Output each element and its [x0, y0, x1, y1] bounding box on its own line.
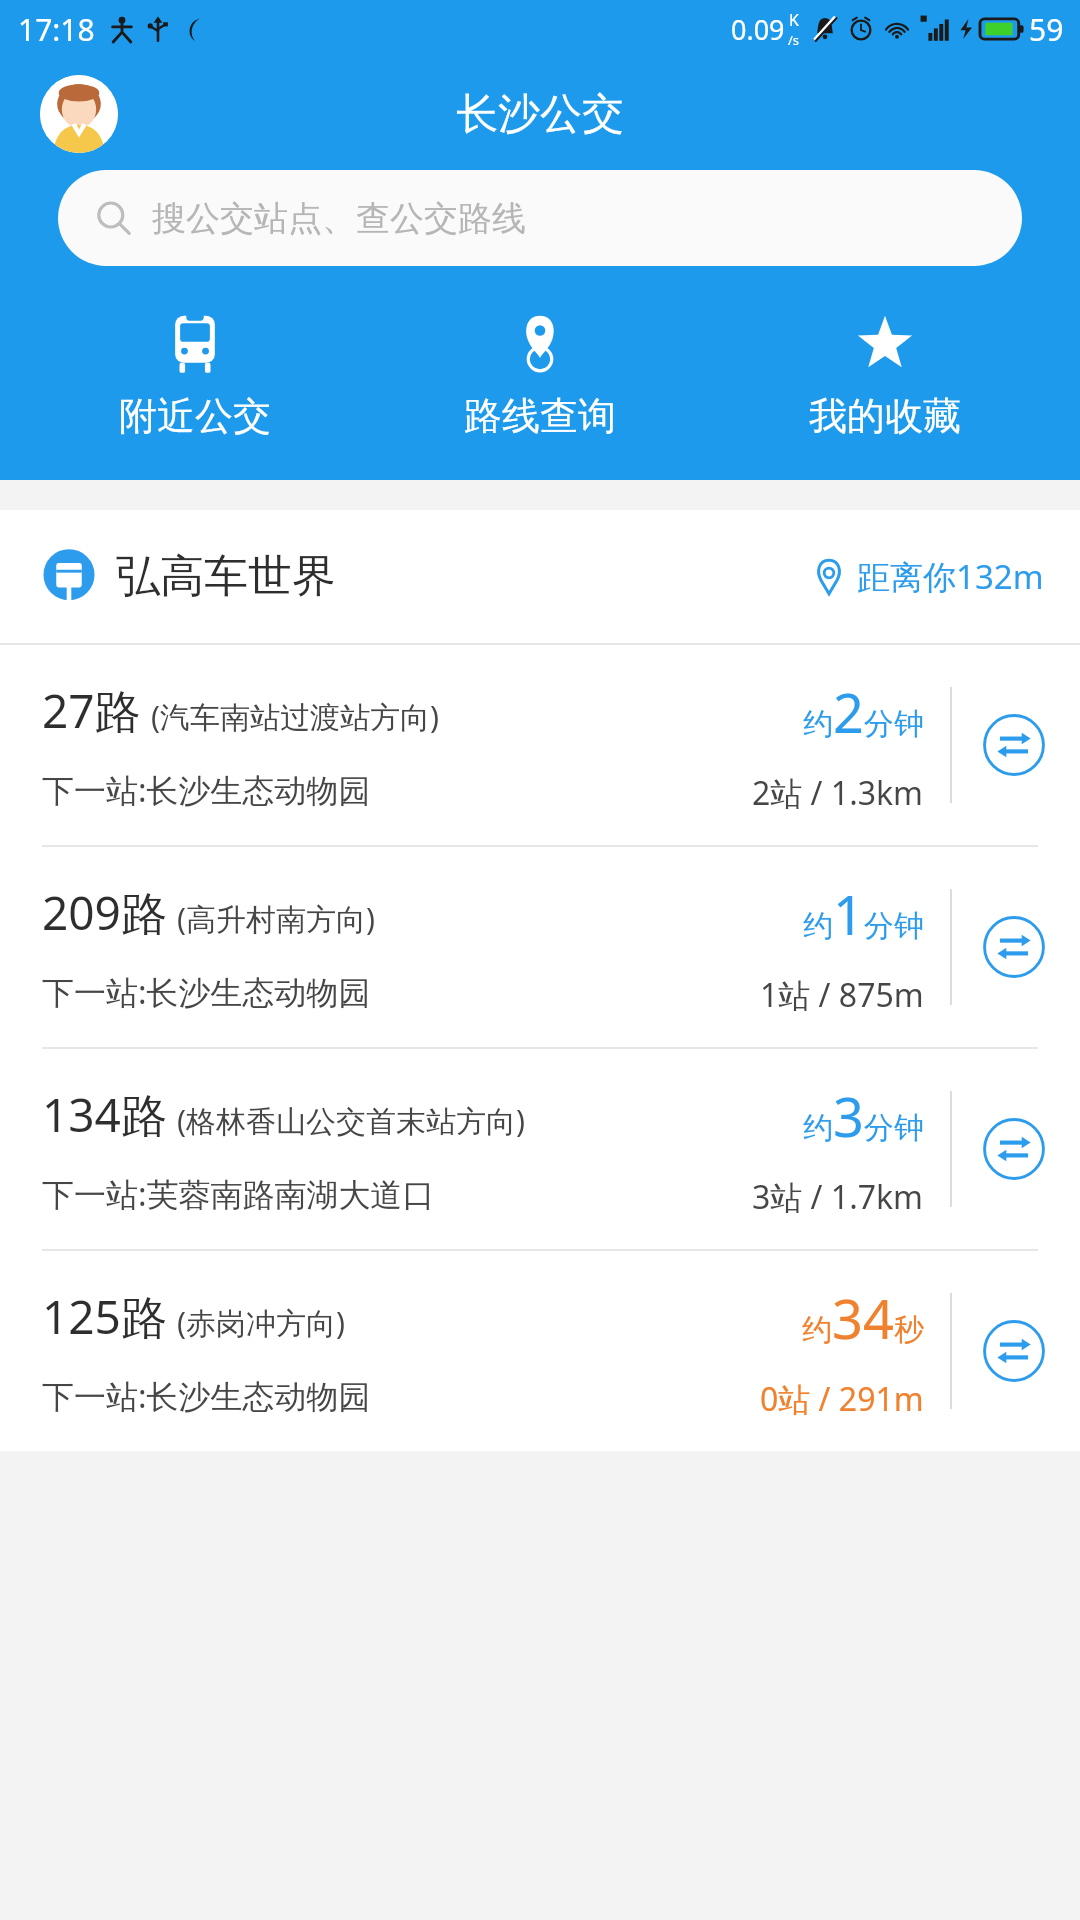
staticText: (赤岗冲方向) — [177, 1302, 345, 1343]
staticText: K — [789, 9, 799, 31]
staticText: 1 — [833, 877, 864, 951]
staticText: 下一站:长沙生态动物园 — [42, 970, 371, 1014]
button[interactable]: 209路 — [0, 847, 1080, 1049]
staticText: 约 — [802, 1311, 832, 1349]
staticText: 134路 — [42, 1083, 167, 1146]
staticText: 秒 — [894, 1311, 924, 1349]
staticText: 约 — [803, 705, 833, 743]
staticText: 125路 — [42, 1285, 167, 1348]
staticText: 209路 — [42, 881, 167, 944]
staticText: 附近公交 — [119, 392, 271, 440]
button[interactable]: 弘高车世界 — [0, 510, 1080, 643]
staticText: (格林香山公交首末站方向) — [177, 1100, 525, 1141]
staticText: 路线查询 — [464, 392, 616, 440]
staticText: /s — [788, 31, 800, 49]
staticText: 约 — [803, 907, 833, 945]
button[interactable]: 路线查询 — [390, 308, 690, 444]
staticText: 我的收藏 — [809, 392, 961, 440]
staticText: 距离你132m — [857, 554, 1044, 599]
button[interactable]: Switch direction — [978, 709, 1050, 781]
staticText: 下一站:长沙生态动物园 — [42, 1374, 371, 1418]
staticText: (汽车南站过渡站方向) — [151, 696, 439, 737]
staticText: 分钟 — [864, 1109, 924, 1147]
staticText: 长沙公交 — [456, 88, 624, 141]
button[interactable]: 搜公交站点、查公交路线 — [58, 170, 1022, 266]
button[interactable]: 134路 — [0, 1049, 1080, 1251]
staticText: 弘高车世界 — [116, 549, 336, 604]
staticText: 59 — [1029, 9, 1064, 50]
staticText: 0站 / 291m — [760, 1377, 924, 1421]
button[interactable]: 附近公交 — [45, 308, 345, 444]
staticText: 3站 / 1.7km — [752, 1175, 924, 1219]
button[interactable]: 27路 — [0, 645, 1080, 847]
button[interactable]: Switch direction — [978, 1113, 1050, 1185]
staticText: 0.09 — [731, 11, 785, 48]
staticText: 下一站:芙蓉南路南湖大道口 — [42, 1172, 435, 1216]
staticText: 34 — [832, 1281, 894, 1355]
staticText: 搜公交站点、查公交路线 — [152, 197, 526, 240]
button[interactable]: 125路 — [0, 1251, 1080, 1451]
staticText: 3 — [833, 1079, 864, 1153]
button[interactable]: 我的收藏 — [735, 308, 1035, 444]
staticText: (高升村南方向) — [177, 898, 375, 939]
staticText: 27路 — [42, 679, 141, 742]
staticText: 分钟 — [864, 705, 924, 743]
staticText: 分钟 — [864, 907, 924, 945]
staticText: 2 — [833, 675, 864, 749]
staticText: 17:18 — [18, 9, 95, 50]
button[interactable]: Switch direction — [978, 1315, 1050, 1387]
staticText: 约 — [803, 1109, 833, 1147]
button[interactable]: Switch direction — [978, 911, 1050, 983]
button[interactable]: Profile — [40, 75, 118, 153]
staticText: 2站 / 1.3km — [752, 771, 924, 815]
staticText: 1站 / 875m — [760, 973, 924, 1017]
staticText: 下一站:长沙生态动物园 — [42, 768, 371, 812]
